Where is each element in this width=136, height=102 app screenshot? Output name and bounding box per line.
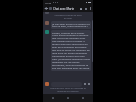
staticText: Messages chiffrés de bout en bout xyxy=(53,14,83,20)
staticText: Appuyez pour saisir un message et appuye… xyxy=(46,87,90,93)
button[interactable]: Send xyxy=(87,82,91,86)
button[interactable]: Parfait, content de le savoir. Nous avon… xyxy=(52,31,90,70)
button[interactable]: Back xyxy=(48,94,58,102)
staticText: Parfait, content de le savoir. Nous avon… xyxy=(52,31,90,70)
button[interactable]: Video call xyxy=(78,6,83,11)
button[interactable]: Home xyxy=(63,94,73,102)
button[interactable]: More options xyxy=(88,6,92,11)
staticText: Je suis bien arrivé à la maison et tout … xyxy=(52,22,90,28)
button[interactable]: Call xyxy=(83,6,88,11)
button[interactable]: Emoji xyxy=(83,82,87,86)
button[interactable]: Je suis bien arrivé à la maison et tout … xyxy=(52,22,90,28)
staticText: 10:42 xyxy=(45,1,52,4)
button[interactable]: Attach photo xyxy=(45,82,49,86)
staticText: Chat avec Marie xyxy=(53,7,78,11)
button[interactable]: Recents xyxy=(78,94,88,102)
button[interactable]: Back xyxy=(44,6,49,11)
